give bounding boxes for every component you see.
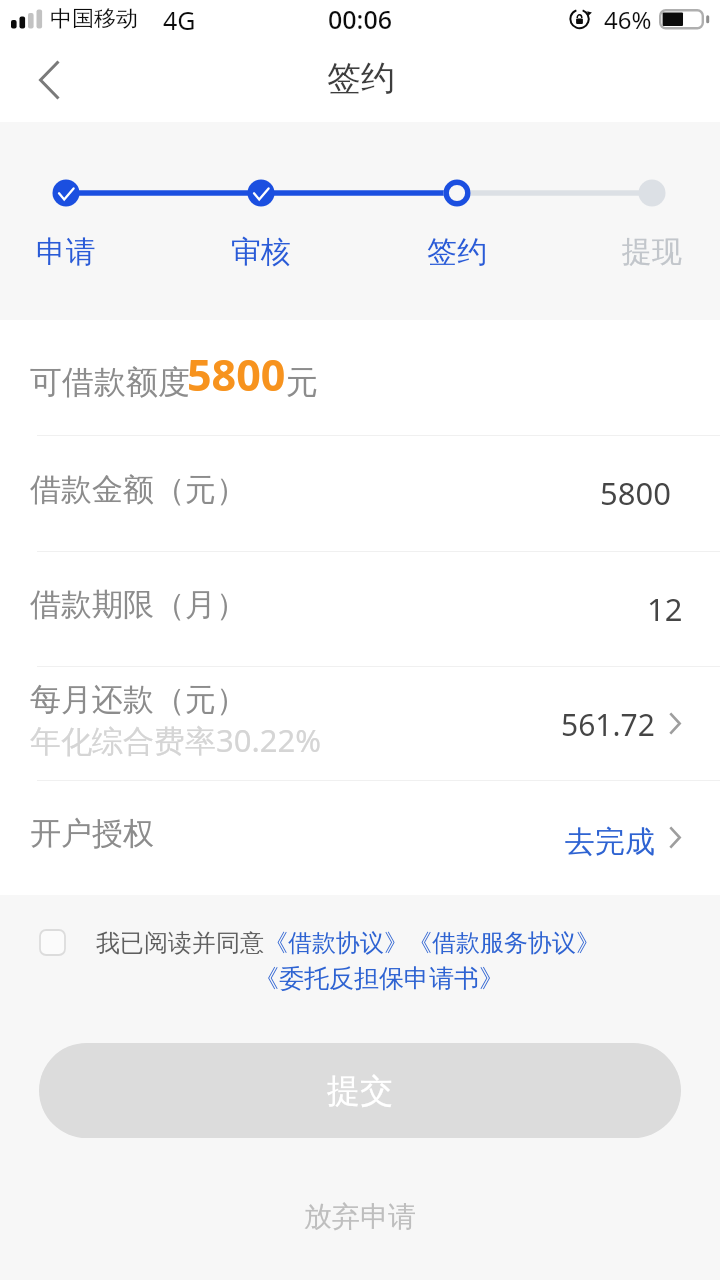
button[interactable]: 开户授权 [0,780,720,895]
staticText: 开户授权 [30,814,154,853]
staticText: 《委托反担保申请书》 [254,963,504,994]
staticText: 46% [604,3,652,36]
staticText: 我已阅读并同意 [96,928,264,958]
staticText: 4G [163,3,196,37]
staticText: 提现 [622,233,682,271]
button[interactable]: 放弃申请 [280,1189,440,1244]
button[interactable]: 借款期限（月） [0,551,720,666]
staticText: 去完成 [565,823,655,861]
button[interactable]: 借款金额（元） [0,435,720,551]
button[interactable]: Back [10,41,88,119]
staticText: 可借款额度 [30,362,190,402]
staticText: 年化综合费率30.22% [30,719,321,761]
staticText: 00:06 [328,2,393,36]
staticText: 审核 [231,233,291,271]
button[interactable]: 提交 [39,1043,681,1138]
staticText: 《借款协议》《借款服务协议》 [264,928,600,958]
button[interactable]: 每月还款（元） [0,666,720,780]
staticText: 申请 [36,233,96,271]
staticText: 12 [647,588,683,630]
staticText: 签约 [327,57,395,100]
staticText: 提交 [327,1070,393,1112]
staticText: 561.72 [561,704,655,745]
button[interactable]: 我已阅读并同意 [0,920,720,965]
staticText: 签约 [427,233,487,271]
staticText: 放弃申请 [304,1199,416,1234]
staticText: 借款期限（月） [30,585,247,624]
staticText: 5800 [187,345,286,404]
staticText: 5800 [600,472,671,514]
staticText: 中国移动 [50,5,138,33]
staticText: 借款金额（元） [30,470,247,509]
staticText: 每月还款（元） [30,680,247,719]
staticText: 元 [286,362,318,402]
